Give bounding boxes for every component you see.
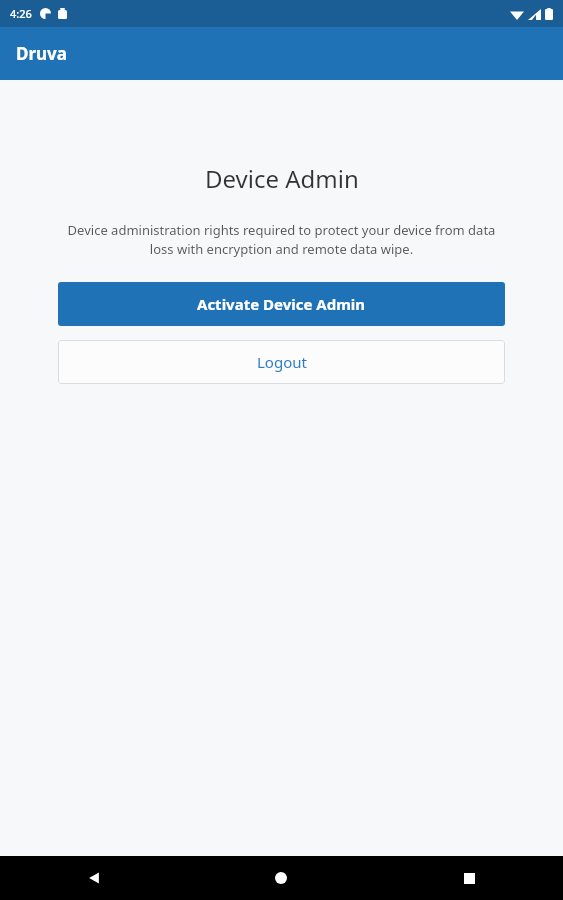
staticText: Activate Device Admin <box>197 294 366 314</box>
button[interactable]: Logout <box>58 340 505 384</box>
button[interactable]: Recent apps <box>375 856 563 900</box>
staticText: Druva <box>16 42 67 65</box>
button[interactable]: Back <box>0 856 187 900</box>
staticText: 4:26 <box>10 6 32 21</box>
button[interactable]: Home <box>187 856 375 900</box>
staticText: Logout <box>257 352 307 372</box>
staticText: Device administration rights required to… <box>62 221 501 258</box>
staticText: Device Admin <box>205 162 359 195</box>
button[interactable]: Activate Device Admin <box>58 282 505 326</box>
